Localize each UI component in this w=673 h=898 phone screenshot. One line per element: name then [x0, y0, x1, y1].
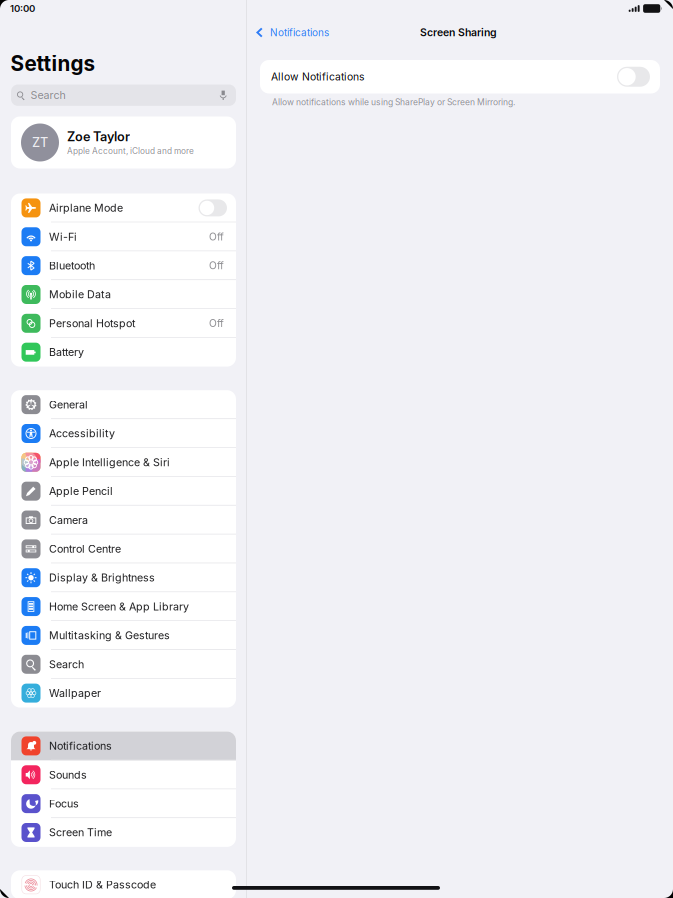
staticText: Focus: [49, 797, 79, 810]
button[interactable]: Camera: [11, 506, 236, 534]
staticText: Bluetooth: [49, 259, 95, 272]
staticText: Wallpaper: [49, 687, 101, 700]
staticText: Search: [49, 658, 84, 671]
staticText: Control Centre: [49, 542, 121, 555]
button[interactable]: Mobile Data: [11, 280, 236, 309]
staticText: Apple Account, iCloud and more: [67, 146, 194, 156]
staticText: Sounds: [49, 768, 87, 781]
button[interactable]: Sounds: [11, 760, 236, 789]
button[interactable]: Personal Hotspot: [11, 309, 236, 338]
staticText: ZT: [32, 135, 48, 150]
staticText: Off: [209, 317, 224, 329]
staticText: 10:00: [10, 3, 35, 14]
button[interactable]: Accessibility: [11, 419, 236, 448]
button[interactable]: Wallpaper: [11, 679, 236, 708]
staticText: Home Screen & App Library: [49, 600, 189, 613]
button[interactable]: Focus: [11, 789, 236, 818]
staticText: Screen Sharing: [420, 26, 497, 39]
button[interactable]: Notifications: [247, 19, 427, 45]
staticText: Notifications: [270, 26, 329, 39]
button[interactable]: Home Screen & App Library: [11, 592, 236, 621]
staticText: General: [49, 398, 88, 411]
staticText: Screen Time: [49, 826, 112, 839]
staticText: Accessibility: [49, 427, 115, 440]
button[interactable]: Allow Notifications: [260, 60, 660, 93]
button[interactable]: Apple Intelligence & Siri: [11, 448, 236, 477]
staticText: Settings: [10, 51, 95, 76]
button[interactable]: Search: [11, 84, 236, 106]
button[interactable]: General: [11, 390, 236, 419]
button[interactable]: Apple Pencil: [11, 477, 236, 506]
staticText: Camera: [49, 514, 88, 526]
staticText: Touch ID & Passcode: [49, 878, 156, 891]
button[interactable]: Battery: [11, 338, 236, 367]
staticText: Apple Intelligence & Siri: [49, 456, 170, 469]
staticText: Off: [209, 231, 224, 243]
staticText: Allow notifications while using SharePla…: [272, 97, 515, 107]
staticText: Airplane Mode: [49, 201, 123, 214]
staticText: Display & Brightness: [49, 571, 155, 584]
staticText: Allow Notifications: [271, 70, 364, 83]
button[interactable]: Multitasking & Gestures: [11, 621, 236, 650]
button[interactable]: Bluetooth: [11, 251, 236, 280]
button[interactable]: Wi-Fi: [11, 222, 236, 251]
button[interactable]: Control Centre: [11, 534, 236, 563]
staticText: Apple Pencil: [49, 485, 113, 498]
button[interactable]: Touch ID & Passcode: [11, 870, 236, 898]
button[interactable]: Search: [11, 650, 236, 679]
staticText: Search: [31, 89, 66, 102]
staticText: Personal Hotspot: [49, 317, 135, 330]
staticText: Notifications: [49, 739, 112, 752]
button[interactable]: Display & Brightness: [11, 563, 236, 592]
button[interactable]: Screen Time: [11, 818, 236, 847]
button[interactable]: Notifications: [11, 731, 236, 760]
staticText: Off: [209, 259, 224, 272]
staticText: Wi-Fi: [49, 230, 77, 243]
button[interactable]: ZT: [11, 116, 236, 168]
button[interactable]: Airplane Mode: [11, 193, 236, 222]
staticText: Battery: [49, 346, 84, 359]
staticText: Mobile Data: [49, 288, 111, 301]
staticText: Zoe Taylor: [67, 129, 130, 144]
staticText: Multitasking & Gestures: [49, 629, 170, 642]
